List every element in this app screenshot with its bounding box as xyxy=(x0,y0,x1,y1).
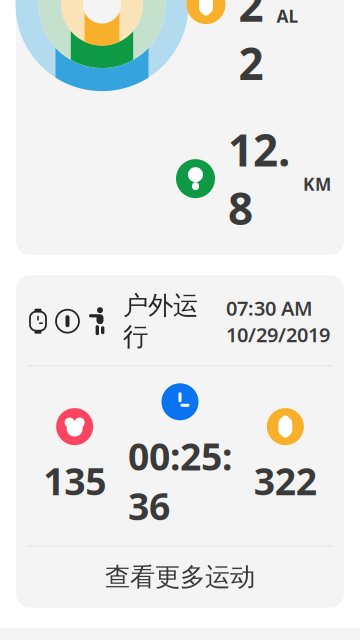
staticText: KCAL xyxy=(276,0,304,28)
staticText: 户外运行 xyxy=(123,290,198,352)
staticText: 查看更多运动 xyxy=(105,561,255,593)
staticText: 00:25:36 xyxy=(128,431,232,530)
button[interactable]: 户外运行 xyxy=(16,275,344,608)
staticText: 322 xyxy=(254,456,317,506)
staticText: 12.8 xyxy=(228,120,290,237)
staticText: KM xyxy=(303,173,331,196)
staticText: 135 xyxy=(43,456,106,506)
staticText: 07:30 AM 10/29/2019 xyxy=(226,295,330,348)
staticText: 322 xyxy=(238,0,263,92)
